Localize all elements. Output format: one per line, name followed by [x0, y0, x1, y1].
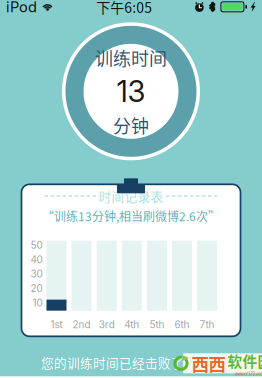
staticText: www.cr173.com [234, 371, 262, 377]
staticText: 40 [30, 253, 42, 266]
staticText: 4th [124, 319, 139, 331]
staticText: 1st [50, 319, 62, 331]
staticText: 30 [30, 268, 42, 280]
staticText: 50 [30, 239, 42, 251]
staticText: 分钟 [113, 112, 149, 138]
staticText: 时间记录表 [98, 187, 163, 205]
staticText: 3rd [99, 319, 115, 331]
staticText: 13 [116, 74, 145, 109]
staticText: 训练时间 [95, 44, 167, 71]
staticText: 7th [200, 319, 215, 331]
staticText: 软件园 [227, 350, 262, 371]
staticText: 2nd [73, 319, 91, 331]
staticText: 您的训练时间已经击败了99%的用户 [41, 353, 249, 372]
staticText: iPod [6, 0, 37, 16]
staticText: “训练13分钟,相当刷微博2.6次” [42, 207, 220, 225]
staticText: 5th [149, 319, 164, 331]
staticText: 6th [174, 319, 189, 331]
staticText: 20 [30, 282, 42, 294]
staticText: 西西 [191, 351, 225, 376]
staticText: 下午6:05 [96, 0, 152, 17]
staticText: 10 [32, 297, 42, 309]
